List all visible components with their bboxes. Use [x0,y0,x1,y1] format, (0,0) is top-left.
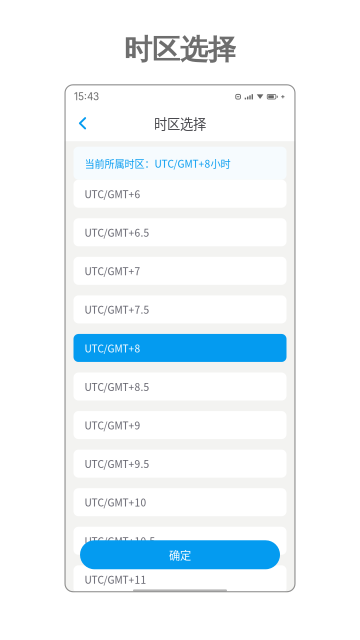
button[interactable]: UTC/GMT+7.5 [73,295,286,323]
staticText: UTC/GMT+9 [84,418,140,432]
button[interactable]: UTC/GMT+9.5 [73,450,286,478]
staticText: UTC/GMT+8.5 [84,379,149,394]
staticText: 时区选择 [124,32,236,67]
staticText: 15:43 [74,91,99,103]
staticText: 时区选择 [154,114,206,133]
staticText: UTC/GMT+6.5 [84,225,149,240]
button[interactable]: 确定 [80,540,280,569]
button[interactable]: UTC/GMT+10.5 [73,527,286,555]
button[interactable]: UTC/GMT+6.5 [73,218,286,246]
staticText: 确定 [169,547,191,563]
staticText: UTC/GMT+9.5 [84,456,149,471]
staticText: UTC/GMT+7.5 [84,302,149,317]
button[interactable]: UTC/GMT+10 [73,488,286,516]
staticText: UTC/GMT+11 [84,572,146,587]
staticText: 当前所属时区：UTC/GMT+8小时 [84,156,230,171]
staticText: UTC/GMT+8 [84,341,140,355]
button[interactable]: UTC/GMT+8.5 [73,372,286,400]
button[interactable]: UTC/GMT+8 [73,334,286,362]
button[interactable]: UTC/GMT+9 [73,411,286,439]
button[interactable]: UTC/GMT+7 [73,257,286,285]
staticText: UTC/GMT+10 [84,495,146,510]
button[interactable]: UTC/GMT+6 [73,180,286,208]
staticText: UTC/GMT+6 [84,186,140,201]
staticText: UTC/GMT+7 [84,263,140,278]
button[interactable]: Back [70,108,94,138]
button[interactable]: UTC/GMT+11 [73,565,286,593]
staticText: UTC/GMT+10.5 [84,533,155,548]
